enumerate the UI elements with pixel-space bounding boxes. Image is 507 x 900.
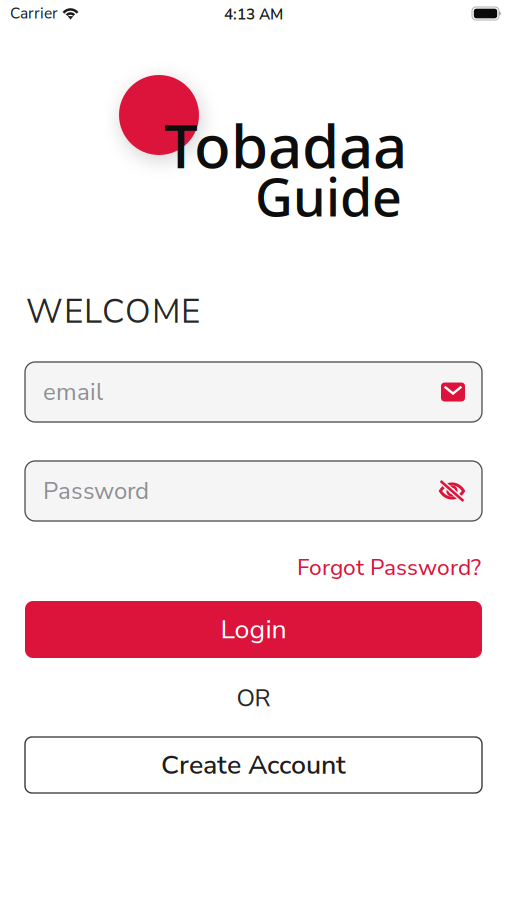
- button[interactable]: Password: [25, 461, 482, 521]
- staticText: Forgot Password?: [297, 552, 481, 583]
- staticText: 4:13 AM: [224, 4, 283, 25]
- button[interactable]: Login: [25, 601, 482, 658]
- staticText: OR: [236, 682, 270, 715]
- button[interactable]: email: [25, 362, 482, 422]
- button[interactable]: Forgot Password?: [297, 552, 481, 583]
- staticText: Carrier: [10, 3, 58, 24]
- button[interactable]: Create Account: [25, 737, 482, 793]
- staticText: email: [43, 376, 103, 408]
- staticText: Tobadaa: [164, 104, 407, 186]
- staticText: Password: [43, 475, 149, 507]
- staticText: WELCOME: [26, 289, 200, 334]
- staticText: Guide: [255, 161, 402, 232]
- staticText: Login: [220, 611, 286, 648]
- staticText: Create Account: [161, 747, 346, 783]
